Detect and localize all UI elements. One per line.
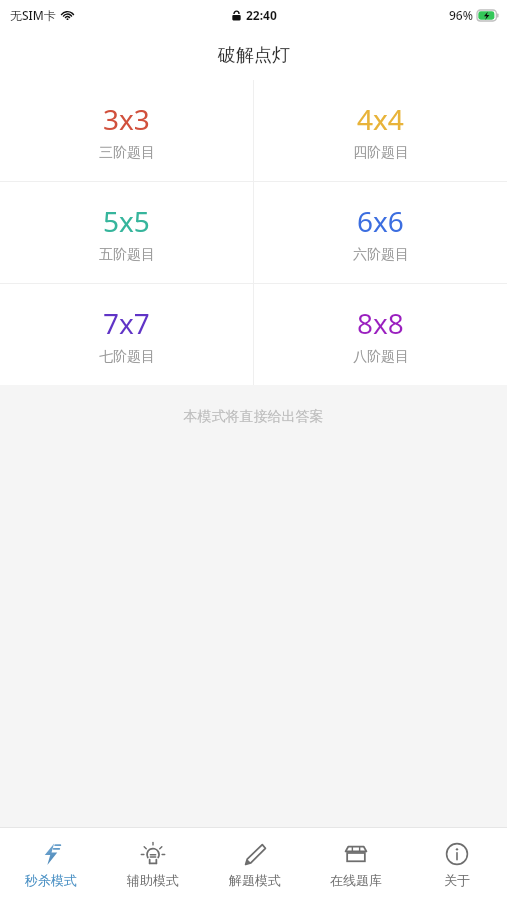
staticText: 5x5	[103, 202, 150, 240]
button[interactable]: 5x5	[0, 182, 253, 283]
staticText: 解题模式	[229, 872, 281, 888]
staticText: 6x6	[357, 202, 404, 240]
staticText: 在线题库	[330, 872, 382, 888]
staticText: 本模式将直接给出答案	[0, 408, 507, 426]
staticText: 7x7	[103, 304, 150, 342]
staticText: 秒杀模式	[25, 872, 77, 888]
staticText: 4x4	[357, 100, 404, 138]
staticText: 六阶题目	[353, 246, 409, 264]
button[interactable]: 在线题库	[305, 828, 406, 900]
staticText: 破解点灯	[218, 44, 290, 67]
button[interactable]: 4x4	[254, 80, 507, 181]
staticText: 关于	[444, 872, 470, 888]
button[interactable]: 8x8	[254, 284, 507, 385]
button[interactable]: 辅助模式	[102, 828, 204, 900]
staticText: 辅助模式	[127, 872, 179, 888]
staticText: 96%	[449, 7, 473, 23]
button[interactable]: 关于	[406, 828, 507, 900]
staticText: 22:40	[246, 7, 277, 23]
staticText: 三阶题目	[99, 144, 155, 162]
staticText: 八阶题目	[353, 348, 409, 366]
staticText: 四阶题目	[353, 144, 409, 162]
button[interactable]: 7x7	[0, 284, 253, 385]
button[interactable]: 解题模式	[204, 828, 305, 900]
staticText: 3x3	[103, 100, 150, 138]
button[interactable]: 3x3	[0, 80, 253, 181]
staticText: 五阶题目	[99, 246, 155, 264]
staticText: 8x8	[357, 304, 404, 342]
button[interactable]: 6x6	[254, 182, 507, 283]
staticText: 七阶题目	[99, 348, 155, 366]
staticText: 无SIM卡	[10, 7, 56, 23]
button[interactable]: 秒杀模式	[0, 828, 102, 900]
